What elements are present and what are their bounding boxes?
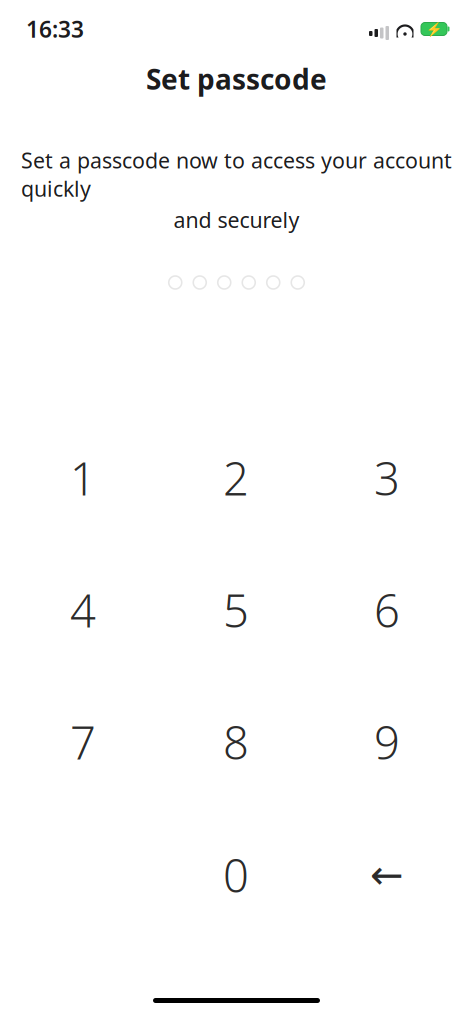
button[interactable]: 1 xyxy=(17,419,149,537)
staticText: 7 xyxy=(70,712,96,772)
staticText: and securely xyxy=(173,206,299,234)
staticText: 6 xyxy=(374,580,400,640)
staticText: ← xyxy=(370,852,404,898)
staticText: 5 xyxy=(223,580,249,640)
staticText: Set passcode xyxy=(146,60,327,98)
button[interactable]: 0 xyxy=(170,816,302,934)
staticText: 8 xyxy=(223,712,249,772)
staticText: Set a passcode now to access your accoun… xyxy=(21,146,452,203)
staticText: 1 xyxy=(70,448,96,508)
button[interactable]: 3 xyxy=(321,419,453,537)
staticText: 3 xyxy=(374,448,400,508)
button[interactable]: Delete xyxy=(321,816,453,934)
button[interactable]: 9 xyxy=(321,683,453,801)
button[interactable]: 2 xyxy=(170,419,302,537)
button[interactable]: 6 xyxy=(321,551,453,669)
staticText: 0 xyxy=(223,845,249,905)
button[interactable]: 4 xyxy=(17,551,149,669)
staticText: ⚡ xyxy=(425,21,442,37)
staticText: 9 xyxy=(374,712,400,772)
staticText: 4 xyxy=(70,580,96,640)
staticText: 2 xyxy=(223,448,249,508)
button[interactable]: 8 xyxy=(170,683,302,801)
button[interactable]: 5 xyxy=(170,551,302,669)
staticText: 16:33 xyxy=(26,14,84,44)
button[interactable]: 7 xyxy=(17,683,149,801)
